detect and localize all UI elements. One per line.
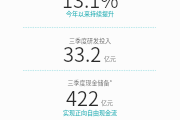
staticText: 422 xyxy=(66,83,99,112)
staticText: 今年以来持续提升 xyxy=(0,9,180,18)
staticText: 亿元 xyxy=(104,54,117,63)
staticText: 13.1% xyxy=(62,0,119,14)
staticText: 三季度研发投入 xyxy=(0,36,180,45)
staticText: 33.2 xyxy=(63,39,102,68)
staticText: 亿元 xyxy=(101,98,114,107)
staticText: 实现正向自由现金流 xyxy=(0,108,180,117)
staticText: 三季度现金储备* xyxy=(0,78,180,87)
